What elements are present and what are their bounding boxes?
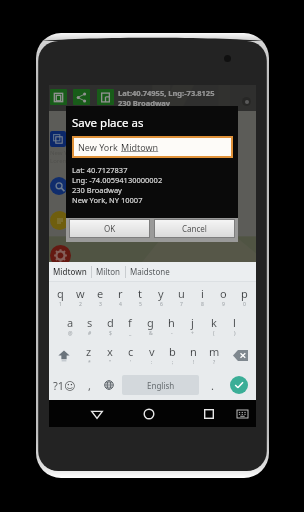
button[interactable]: OK xyxy=(70,220,149,237)
button[interactable]: Shift xyxy=(49,340,79,370)
staticText: x xyxy=(107,344,113,359)
staticText: z xyxy=(86,344,92,359)
button[interactable]: r xyxy=(110,282,130,311)
staticText: . xyxy=(211,378,214,393)
button[interactable]: Share xyxy=(73,89,90,105)
button[interactable]: c xyxy=(120,340,141,370)
button[interactable]: Notes xyxy=(50,211,69,230)
staticText: _ xyxy=(129,330,132,337)
button[interactable]: d xyxy=(100,311,120,340)
staticText: t xyxy=(138,286,142,301)
staticText: o xyxy=(220,286,227,301)
staticText: b xyxy=(169,344,176,359)
button[interactable]: m xyxy=(204,340,225,370)
button[interactable]: Backspace xyxy=(225,340,256,370)
button[interactable]: ?1☺ xyxy=(49,370,80,400)
staticText: ; xyxy=(172,359,174,366)
button[interactable]: z xyxy=(79,340,99,370)
staticText: y xyxy=(158,286,164,301)
button[interactable]: t xyxy=(130,282,150,311)
staticText: e xyxy=(97,286,104,301)
staticText: j xyxy=(191,315,194,330)
staticText: Lorem xyxy=(50,157,69,165)
button[interactable]: Milton xyxy=(96,266,121,277)
button[interactable]: Compass xyxy=(242,97,251,106)
staticText: & xyxy=(149,330,153,337)
button[interactable]: Midtown xyxy=(53,266,87,277)
button[interactable]: English xyxy=(122,375,199,395)
staticText: * xyxy=(88,359,91,366)
button[interactable]: u xyxy=(171,282,192,311)
staticText: + xyxy=(191,330,194,337)
button[interactable]: l xyxy=(224,311,245,340)
button[interactable]: h xyxy=(161,311,182,340)
staticText: $ xyxy=(109,330,112,337)
button[interactable]: p xyxy=(234,282,255,311)
button[interactable]: New York xyxy=(74,138,231,156)
staticText: h xyxy=(168,315,175,330)
staticText: OK xyxy=(104,223,116,234)
staticText: New York xyxy=(78,141,121,153)
button[interactable]: g xyxy=(140,311,161,340)
button[interactable]: Switch keyboard xyxy=(232,400,252,427)
button[interactable]: Search xyxy=(50,177,68,195)
staticText: g xyxy=(147,315,154,330)
staticText: Lng: -74.00594130000002 xyxy=(72,175,163,185)
staticText: l xyxy=(233,315,236,330)
button[interactable]: f xyxy=(120,311,140,340)
staticText: : xyxy=(151,359,153,366)
staticText: , xyxy=(88,378,91,393)
button[interactable]: , xyxy=(80,370,99,400)
button[interactable]: a xyxy=(60,311,80,340)
button[interactable]: Maidstone xyxy=(130,266,170,277)
button[interactable]: Copy xyxy=(50,89,67,105)
staticText: ?1☺ xyxy=(53,378,76,393)
staticText: m xyxy=(209,344,220,359)
button[interactable]: Home xyxy=(136,400,162,427)
staticText: Lat:40.74955, Lng:-73.8125 xyxy=(118,88,215,98)
button[interactable]: s xyxy=(80,311,100,340)
button[interactable]: q xyxy=(50,282,70,311)
staticText: k xyxy=(211,315,217,330)
staticText: 9 xyxy=(222,301,225,308)
staticText: New York, NY 10007 xyxy=(72,195,143,205)
button[interactable]: Settings xyxy=(50,245,71,266)
button[interactable]: Recent apps xyxy=(196,400,222,427)
staticText: @ xyxy=(68,330,73,337)
button[interactable]: j xyxy=(182,311,203,340)
button[interactable]: Back xyxy=(84,400,110,427)
button[interactable]: i xyxy=(192,282,213,311)
button[interactable]: y xyxy=(150,282,171,311)
button[interactable]: o xyxy=(213,282,234,311)
button[interactable]: Enter xyxy=(222,370,256,400)
button[interactable]: n xyxy=(183,340,204,370)
staticText: 2 xyxy=(79,301,82,308)
button[interactable]: x xyxy=(99,340,120,370)
staticText: Cancel xyxy=(182,223,207,234)
staticText: 5 xyxy=(139,301,142,308)
staticText: - xyxy=(171,330,173,337)
staticText: i xyxy=(201,286,204,301)
button[interactable]: Cancel xyxy=(155,220,234,237)
button[interactable]: Change language xyxy=(99,370,119,400)
staticText: 3 xyxy=(99,301,102,308)
staticText: q xyxy=(57,286,64,301)
staticText: 0 xyxy=(243,301,246,308)
staticText: ' xyxy=(130,359,132,366)
button[interactable]: Copy xyxy=(97,89,114,105)
staticText: New Y xyxy=(50,149,68,157)
staticText: u xyxy=(178,286,185,301)
staticText: 6 xyxy=(160,301,163,308)
staticText: 230 Broadway xyxy=(72,185,122,195)
button[interactable]: e xyxy=(90,282,110,311)
button[interactable]: k xyxy=(203,311,224,340)
staticText: Save place as xyxy=(72,115,144,131)
button[interactable]: v xyxy=(141,340,162,370)
button[interactable]: Copy place xyxy=(50,131,66,147)
button[interactable]: b xyxy=(162,340,183,370)
button[interactable]: . xyxy=(202,370,222,400)
staticText: ! xyxy=(193,359,195,366)
staticText: Lat: 40.7127837 xyxy=(72,165,128,175)
staticText: s xyxy=(87,315,93,330)
button[interactable]: w xyxy=(70,282,90,311)
